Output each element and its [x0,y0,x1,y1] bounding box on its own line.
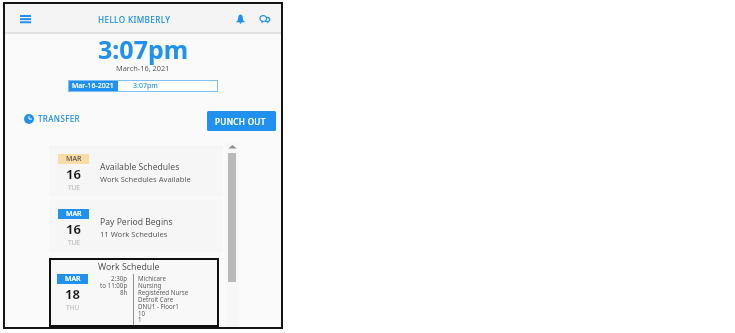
staticText: MAR [66,209,82,219]
staticText: 18 [65,285,80,303]
button[interactable]: Work Schedule [49,258,219,327]
staticText: 16 [66,165,81,183]
staticText: MAR [65,274,81,284]
staticText: March-16, 2021 [116,63,170,73]
staticText: MAR [66,154,82,164]
staticText: 2:30p [111,274,128,282]
staticText: 10 [138,309,146,317]
staticText: Nursing [138,281,162,289]
staticText: TRANSFER [38,113,80,124]
button[interactable]: MAR [49,145,223,196]
button[interactable]: Messages [258,12,272,26]
staticText: THU [66,303,80,312]
staticText: DNU1 - Floor1 [138,302,179,310]
button[interactable]: Mar-16-2021 [68,80,218,92]
staticText: TUE [68,183,80,192]
staticText: Mar-16-2021 [72,81,114,91]
staticText: TUE [68,238,80,247]
button[interactable]: TRANSFER [24,113,80,124]
staticText: Registered Nurse [138,288,189,296]
staticText: 8h [120,288,128,296]
staticText: 3:07pm [133,81,158,91]
staticText: HELLO KIMBERLY [98,14,171,25]
staticText: PUNCH OUT [215,116,266,127]
button[interactable]: PUNCH OUT [207,111,276,131]
staticText: 16 [66,220,81,238]
staticText: Available Schedules [100,161,180,173]
button[interactable]: Notifications [233,12,247,26]
staticText: Detroit Care [138,295,174,303]
staticText: 1 [138,315,142,323]
button[interactable]: Menu [13,7,37,31]
staticText: 3:07pm [98,32,189,66]
staticText: Pay Period Begins [100,216,173,228]
button[interactable]: MAR [49,200,223,252]
staticText: Michicare [138,274,166,282]
staticText: 11 Work Schedules [100,229,168,239]
staticText: to 11:00p [100,281,128,289]
staticText: Work Schedule [98,261,160,273]
staticText: Work Schedules Available [100,174,191,184]
